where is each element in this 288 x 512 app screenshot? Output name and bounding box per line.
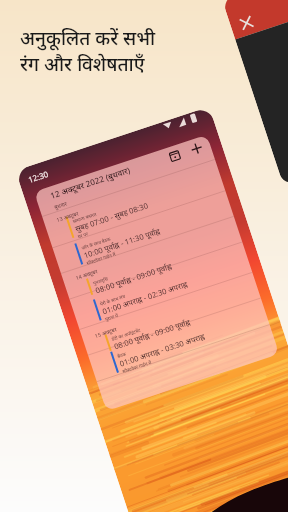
staticText: मैरी के साथ लंच (99, 293, 127, 307)
staticText: 08:00 पूर्वाह्न - 09:00 पूर्वाह्न (94, 261, 173, 295)
staticText: बुधवार (53, 200, 68, 210)
staticText: रंग और विशेषताएँ (20, 51, 145, 77)
staticText: पुराना में (104, 312, 119, 322)
staticText: 10:00 पूर्वाह्न - 11:30 पूर्वाह्न (82, 226, 162, 260)
staticText: सुबह 07:00 - सुबह 08:30 (74, 200, 150, 234)
staticText: सॉफ़्टवेयर गार्डन में (86, 251, 117, 266)
staticText: 12 अक्टूबर 2022 (बुधवार) (49, 164, 132, 201)
staticText: 13 अक्टूबर (55, 209, 79, 223)
staticText: पुनरावृत्ति (92, 275, 109, 286)
staticText: घर पर (77, 230, 89, 239)
staticText: 01:00 अपराह्न - 03:30 अपराह्न (118, 331, 206, 368)
staticText: डेंटी का अपॉइंटमेंट (111, 327, 142, 342)
staticText: 01:00 अपराह्न - 02:30 अपराह्न (101, 279, 189, 316)
staticText: 08:00 पूर्वाह्न - 09:00 पूर्वाह्न (113, 317, 192, 351)
staticText: 12:30 (27, 168, 50, 185)
staticText: 14 अक्टूबर (74, 267, 98, 281)
staticText: 15 अक्टूबर (94, 325, 118, 339)
staticText: बैठक (116, 351, 127, 359)
staticText: सॉफ़्टवेयर गार्डन में (121, 359, 153, 374)
staticText: सामान्य कसरत (72, 211, 97, 224)
staticText: अनुकूलित करें सभी (20, 25, 156, 51)
staticText: जॉन के साथ बैठक (81, 235, 112, 251)
